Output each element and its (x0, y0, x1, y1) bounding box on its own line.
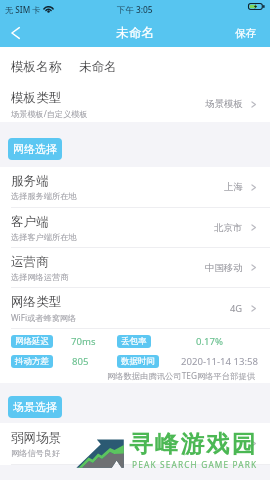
staticText: 服务端 (11, 173, 49, 189)
staticText: 场景模板/自定义模板 (11, 108, 88, 119)
button[interactable]: 弱网场景 (0, 423, 270, 465)
staticText: 数据时间 (121, 356, 155, 367)
staticText: PEAK SEARCH GAME PARK (132, 459, 258, 470)
staticText: 北京市 (214, 222, 243, 234)
staticText: 弱网场景 (11, 430, 62, 446)
staticText: 70ms (71, 335, 96, 348)
staticText: WiFi或者蜂窝网络 (11, 312, 77, 323)
staticText: 客户端 (11, 214, 49, 230)
staticText: 下午 3:05 (117, 4, 153, 15)
staticText: 中国移动 (205, 262, 243, 274)
staticText: 网络类型 (11, 294, 62, 310)
button[interactable]: 场景选择 (8, 396, 62, 418)
staticText: 运营商 (11, 254, 49, 270)
staticText: 0.17% (196, 335, 224, 348)
button[interactable]: 运营商 (0, 248, 270, 288)
staticText: 未命名 (116, 25, 155, 41)
staticText: 选择网络运营商 (11, 272, 69, 282)
staticText: 丢包率 (121, 336, 147, 347)
staticText: 4G (230, 302, 243, 315)
staticText: 抖动方差 (15, 356, 49, 367)
button[interactable]: 保存 (222, 20, 270, 47)
staticText: 寻峰游戏园 (129, 429, 258, 459)
button[interactable]: 服务端 (0, 167, 270, 208)
staticText: 无 SIM 卡 (5, 4, 41, 15)
staticText: 上海 (224, 181, 243, 193)
staticText: 网络数据由腾讯公司TEG网络平台部提供 (0, 370, 255, 381)
staticText: 场景选择 (13, 400, 57, 414)
staticText: 未命名 (79, 59, 117, 75)
button[interactable]: Back (0, 20, 32, 47)
staticText: 选择服务端所在地 (11, 191, 77, 201)
staticText: 模板名称 (11, 59, 62, 75)
staticText: 网络信号良好 (11, 448, 61, 458)
staticText: 模板类型 (11, 90, 62, 106)
button[interactable]: 网络类型 (0, 288, 270, 329)
staticText: 网络选择 (13, 142, 57, 156)
staticText: 2020-11-14 13:58 (181, 355, 259, 368)
button[interactable]: 模板名称 (11, 47, 258, 86)
button[interactable]: 客户端 (0, 208, 270, 248)
staticText: 保存 (235, 27, 257, 41)
staticText: 网络延迟 (15, 336, 49, 347)
button[interactable]: 网络选择 (8, 138, 62, 160)
button[interactable]: 模板类型 (0, 86, 270, 122)
staticText: 场景模板 (205, 98, 243, 110)
staticText: 805 (72, 355, 89, 368)
staticText: 选择客户端所在地 (11, 232, 77, 242)
